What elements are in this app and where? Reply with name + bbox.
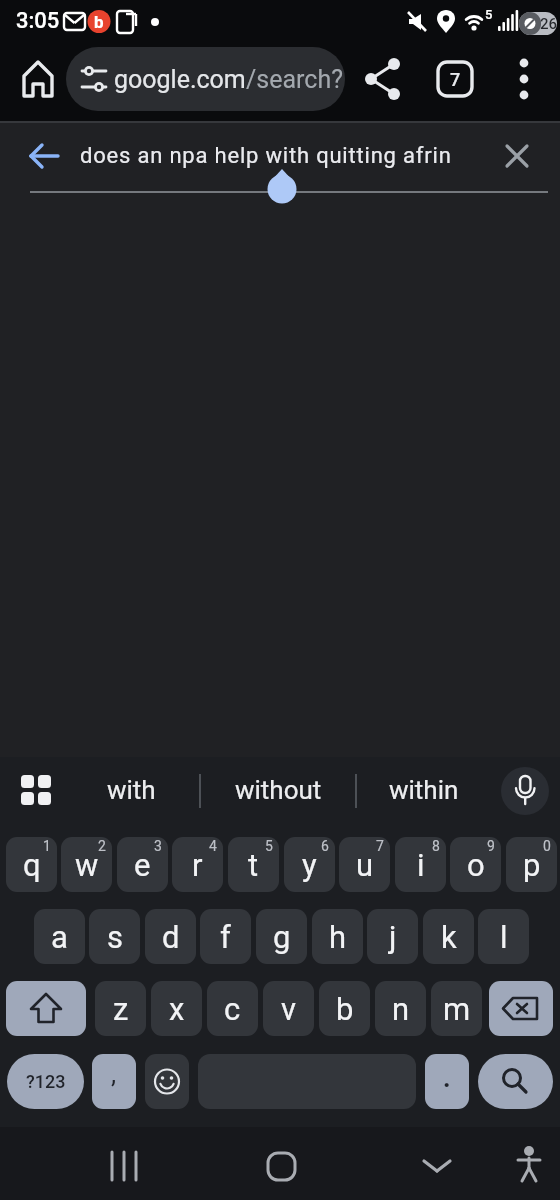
staticText: r xyxy=(192,847,203,883)
button[interactable]: f xyxy=(200,909,251,964)
button[interactable] xyxy=(356,52,408,104)
staticText: w xyxy=(75,847,99,883)
button[interactable] xyxy=(8,765,60,817)
button[interactable]: d xyxy=(145,909,196,964)
staticText: 3:05 xyxy=(16,8,60,34)
staticText: 5 xyxy=(265,838,273,854)
button[interactable]: k xyxy=(423,909,474,964)
staticText: 8 xyxy=(432,838,440,854)
staticText: x xyxy=(169,991,185,1027)
button[interactable] xyxy=(16,130,72,182)
button[interactable] xyxy=(227,765,329,815)
staticText: 7 xyxy=(450,69,461,90)
staticText: k xyxy=(441,919,457,955)
button[interactable]: s xyxy=(89,909,140,964)
button[interactable]: c xyxy=(207,981,258,1036)
button[interactable]: v xyxy=(263,981,314,1036)
button[interactable]: u xyxy=(339,837,390,892)
button[interactable]: q xyxy=(6,837,57,892)
staticText: f xyxy=(220,919,231,955)
button[interactable]: . xyxy=(425,1054,469,1109)
staticText: s xyxy=(107,919,123,955)
staticText: . xyxy=(443,1063,451,1093)
button[interactable]: e xyxy=(117,837,168,892)
staticText: 9 xyxy=(487,838,495,854)
staticText: u xyxy=(356,847,374,883)
button[interactable]: y xyxy=(284,837,335,892)
staticText: c xyxy=(224,991,241,1027)
button[interactable]: g xyxy=(256,909,307,964)
staticText: m xyxy=(443,991,471,1027)
button[interactable]: j xyxy=(367,909,418,964)
button[interactable] xyxy=(80,765,182,815)
button[interactable] xyxy=(501,767,549,815)
staticText: y xyxy=(302,847,317,883)
staticText: within xyxy=(389,775,459,805)
staticText: l xyxy=(500,919,508,955)
staticText: h xyxy=(329,919,347,955)
button[interactable]: b xyxy=(319,981,370,1036)
staticText: 3 xyxy=(154,838,162,854)
button[interactable]: t xyxy=(228,837,279,892)
staticText: i xyxy=(417,847,425,883)
button[interactable]: h xyxy=(312,909,363,964)
button[interactable] xyxy=(66,47,345,111)
button[interactable]: r xyxy=(172,837,223,892)
staticText: n xyxy=(392,991,410,1027)
staticText: b xyxy=(94,12,104,32)
staticText: 5 xyxy=(485,7,493,22)
staticText: 2 xyxy=(98,838,106,854)
button[interactable] xyxy=(409,1140,465,1192)
button[interactable]: ?123 xyxy=(7,1054,84,1109)
button[interactable] xyxy=(12,52,64,104)
button[interactable]: n xyxy=(375,981,426,1036)
staticText: z xyxy=(113,991,129,1027)
button[interactable] xyxy=(489,981,553,1036)
button[interactable] xyxy=(253,1140,309,1192)
staticText: a xyxy=(51,919,68,955)
staticText: without xyxy=(235,775,322,805)
button[interactable] xyxy=(478,1054,553,1109)
button[interactable]: p xyxy=(506,837,557,892)
staticText: 26 xyxy=(540,15,557,33)
button[interactable]: w xyxy=(61,837,112,892)
staticText: 6 xyxy=(321,838,329,854)
staticText: q xyxy=(23,847,41,883)
staticText: t xyxy=(248,847,259,883)
staticText: does an npa help with quitting afrin xyxy=(80,143,452,169)
staticText: o xyxy=(467,847,485,883)
staticText: 0 xyxy=(543,838,551,854)
button[interactable]: m xyxy=(431,981,482,1036)
staticText: google.com xyxy=(114,65,246,94)
button[interactable]: o xyxy=(450,837,501,892)
staticText: p xyxy=(523,847,541,883)
button[interactable] xyxy=(96,1140,152,1192)
button[interactable] xyxy=(502,52,546,104)
button[interactable] xyxy=(501,1140,557,1192)
staticText: 4 xyxy=(209,838,217,854)
button[interactable] xyxy=(373,765,475,815)
staticText: ?123 xyxy=(26,1071,66,1092)
button[interactable]: x xyxy=(151,981,202,1036)
staticText: e xyxy=(134,847,151,883)
button[interactable]: , xyxy=(92,1054,136,1109)
staticText: , xyxy=(111,1059,117,1089)
button[interactable]: z xyxy=(95,981,146,1036)
staticText: g xyxy=(273,919,291,955)
button[interactable] xyxy=(145,1054,189,1109)
button[interactable]: a xyxy=(34,909,85,964)
staticText: 7 xyxy=(376,838,384,854)
button[interactable]: i xyxy=(395,837,446,892)
staticText: b xyxy=(336,991,354,1027)
staticText: with xyxy=(107,775,156,805)
button[interactable] xyxy=(492,130,544,182)
staticText: d xyxy=(162,919,180,955)
staticText: v xyxy=(281,991,297,1027)
button[interactable] xyxy=(6,981,86,1036)
button[interactable]: l xyxy=(478,909,529,964)
staticText: 1 xyxy=(43,838,51,854)
staticText: j xyxy=(389,919,397,955)
staticText: /search? xyxy=(246,65,343,94)
button[interactable] xyxy=(430,52,482,104)
